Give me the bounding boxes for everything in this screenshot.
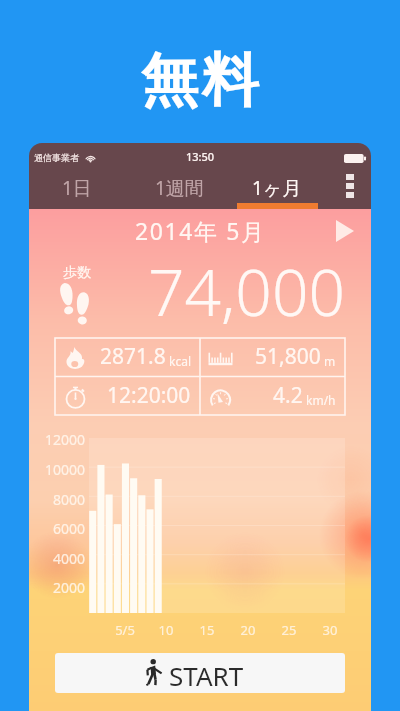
button[interactable]: More options xyxy=(328,163,371,209)
staticText: 10000 xyxy=(31,460,85,479)
staticText: START xyxy=(169,658,244,693)
staticText: 2871.8 xyxy=(100,342,166,371)
staticText: 1日 xyxy=(62,175,92,201)
button[interactable]: 1週間 xyxy=(125,163,234,209)
staticText: 20 xyxy=(228,621,268,639)
staticText: km/h xyxy=(306,392,336,408)
staticText: 通信事業者 xyxy=(34,152,79,163)
button[interactable]: 2871.8 xyxy=(55,338,200,377)
button[interactable]: 51,800 xyxy=(200,338,345,377)
button[interactable]: 4.2 xyxy=(200,377,345,416)
staticText: kcal xyxy=(169,353,191,369)
staticText: 8000 xyxy=(31,490,85,509)
staticText: 30 xyxy=(310,621,350,639)
staticText: 6000 xyxy=(31,519,85,538)
button[interactable]: 1ヶ月 xyxy=(234,163,320,209)
staticText: 74,000 xyxy=(129,248,345,335)
staticText: 2000 xyxy=(31,578,85,597)
staticText: 10 xyxy=(146,621,186,639)
staticText: 無料 xyxy=(139,45,261,117)
staticText: 4.2 xyxy=(273,381,303,410)
staticText: 5/5 xyxy=(105,621,145,639)
staticText: 12:20:00 xyxy=(107,381,191,410)
staticText: 1週間 xyxy=(155,175,204,201)
staticText: 1ヶ月 xyxy=(252,175,302,201)
button[interactable]: Next month xyxy=(331,215,359,247)
staticText: m xyxy=(324,353,336,369)
staticText: 13:50 xyxy=(186,149,215,164)
staticText: 2014年 5月 xyxy=(135,215,266,246)
button[interactable]: START xyxy=(55,653,345,693)
staticText: 15 xyxy=(187,621,227,639)
button[interactable]: 1日 xyxy=(29,163,125,209)
button[interactable]: 12:20:00 xyxy=(55,377,200,416)
staticText: 4000 xyxy=(31,549,85,568)
staticText: 12000 xyxy=(31,430,85,449)
staticText: 25 xyxy=(269,621,309,639)
staticText: 51,800 xyxy=(255,342,321,371)
staticText: 歩数 xyxy=(63,264,91,282)
